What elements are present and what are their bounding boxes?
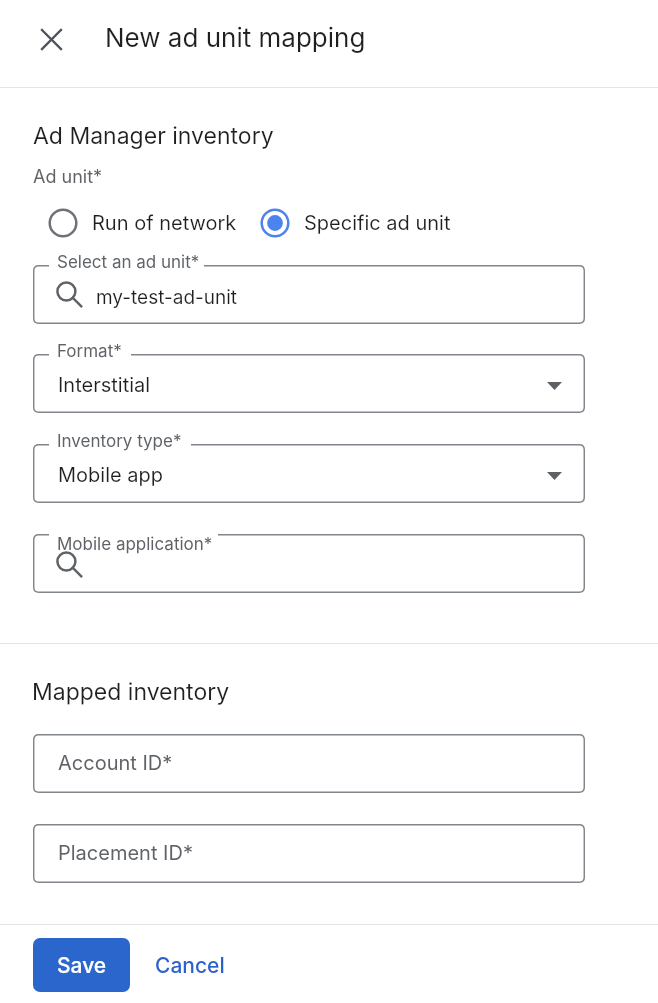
staticText: Interstitial [58, 373, 151, 397]
staticText: Save [57, 953, 107, 978]
staticText: Inventory type* [57, 431, 182, 452]
staticText: Mobile application* [57, 534, 213, 555]
staticText: Specific ad unit [304, 211, 451, 235]
button[interactable]: Account ID* [33, 734, 585, 793]
button[interactable]: Specific ad unit [260, 208, 451, 238]
button[interactable]: Close [27, 15, 75, 63]
button[interactable]: Run of network [48, 208, 237, 238]
button[interactable]: Cancel [144, 938, 236, 992]
staticText: Cancel [155, 953, 225, 978]
staticText: Account ID* [58, 751, 173, 775]
staticText: Ad unit* [33, 166, 103, 188]
staticText: Ad Manager inventory [33, 122, 274, 150]
button[interactable]: my-test-ad-unit [33, 265, 585, 324]
staticText: Placement ID* [58, 841, 193, 865]
staticText: Format* [57, 341, 122, 362]
staticText: Mobile app [58, 463, 163, 487]
staticText: my-test-ad-unit [96, 286, 238, 309]
button[interactable] [33, 534, 585, 593]
staticText: Mapped inventory [32, 678, 230, 706]
staticText: Run of network [92, 211, 237, 235]
button[interactable]: Save [33, 938, 130, 992]
button[interactable]: Mobile app [33, 444, 585, 503]
button[interactable]: Placement ID* [33, 824, 585, 883]
button[interactable]: Interstitial [33, 354, 585, 413]
staticText: Select an ad unit* [57, 252, 200, 273]
staticText: New ad unit mapping [105, 22, 366, 53]
